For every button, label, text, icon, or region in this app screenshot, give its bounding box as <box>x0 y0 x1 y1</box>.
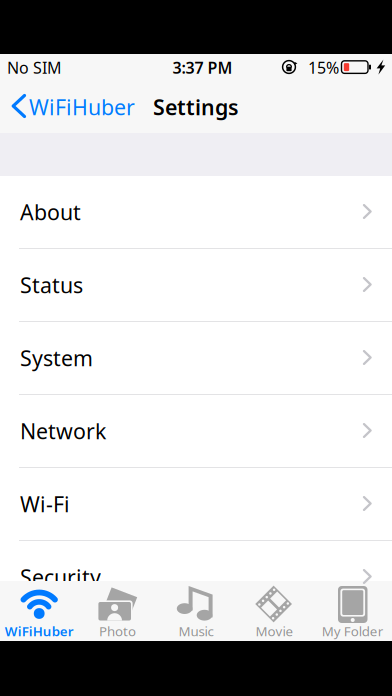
staticText: Photo <box>99 622 136 640</box>
staticText: Wi-Fi <box>20 490 70 518</box>
staticText: Network <box>20 417 106 445</box>
button[interactable]: Music <box>157 581 235 641</box>
staticText: 15% <box>308 57 339 78</box>
staticText: Security <box>20 563 101 591</box>
button[interactable]: Security <box>0 541 392 614</box>
staticText: WiFiHuber <box>5 622 74 640</box>
button[interactable]: Status <box>0 249 392 322</box>
button[interactable]: Network <box>0 395 392 468</box>
button[interactable]: Advanced <box>0 614 392 687</box>
button[interactable]: Wi-Fi <box>0 468 392 541</box>
staticText: Advanced <box>20 636 118 664</box>
button[interactable]: Photo <box>78 581 157 641</box>
staticText: 3:37 PM <box>172 57 232 78</box>
button[interactable]: Movie <box>235 581 314 641</box>
button[interactable]: About <box>0 176 392 249</box>
staticText: My Folder <box>322 622 384 640</box>
staticText: About <box>20 198 81 226</box>
button[interactable]: WiFiHuber <box>0 81 135 133</box>
staticText: Music <box>178 622 213 640</box>
staticText: Settings <box>153 93 239 121</box>
staticText: No SIM <box>7 57 62 78</box>
button[interactable]: My Folder <box>314 581 392 641</box>
staticText: WiFiHuber <box>29 93 135 121</box>
staticText: Status <box>20 271 83 299</box>
button[interactable]: System <box>0 322 392 395</box>
staticText: Movie <box>255 622 293 640</box>
button[interactable]: WiFiHuber <box>0 581 78 641</box>
staticText: System <box>20 344 93 372</box>
